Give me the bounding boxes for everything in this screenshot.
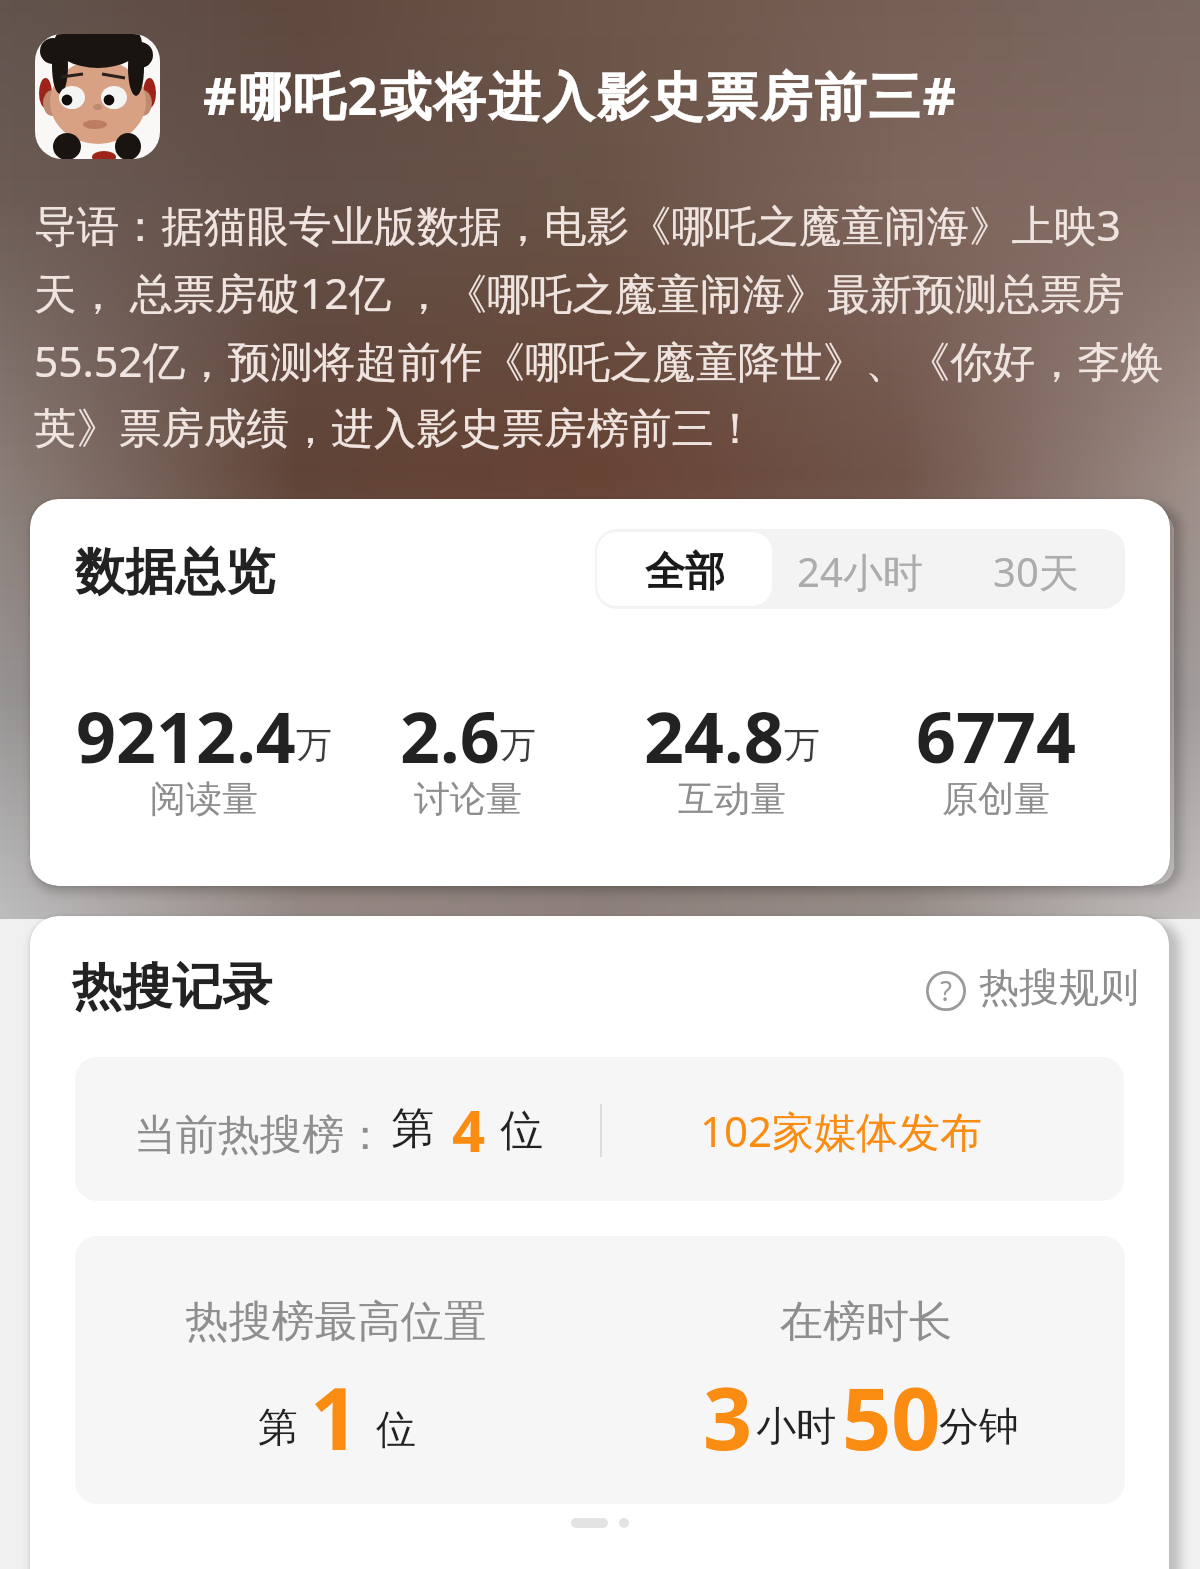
staticText: 9212.4 (76, 688, 296, 783)
staticText: 24小时 (797, 544, 923, 599)
staticText: 第 (258, 1402, 298, 1452)
staticText: 互动量 (678, 776, 786, 821)
staticText: #哪吒2或将进入影史票房前三# (203, 59, 959, 130)
button[interactable]: 24.8 (592, 688, 872, 833)
button[interactable]: 24小时 (772, 529, 947, 609)
staticText: 阅读量 (150, 776, 258, 821)
button[interactable]: 全部 (597, 532, 772, 606)
button[interactable]: 30天 (947, 529, 1125, 609)
staticText: 24.8 (644, 688, 784, 783)
staticText: 导语：据猫眼专业版数据，电影《哪吒之魔童闹海》上映3 天， 总票房破12亿 ，《… (34, 196, 1163, 456)
staticText: 讨论量 (414, 776, 522, 821)
staticText: 50 (842, 1358, 941, 1475)
staticText: 102家媒体发布 (700, 1102, 983, 1159)
staticText: 位 (376, 1404, 416, 1454)
staticText: ? (906, 972, 986, 1009)
staticText: 数据总览 (75, 541, 275, 604)
staticText: 第 (391, 1102, 434, 1156)
staticText: 2.6 (400, 688, 500, 783)
staticText: 分钟 (939, 1401, 1019, 1451)
staticText: 万 (784, 722, 820, 767)
staticText: 位 (500, 1104, 543, 1158)
button[interactable]: 2.6 (328, 688, 608, 833)
staticText: 热搜记录 (72, 956, 272, 1019)
button[interactable]: 6774 (856, 688, 1136, 833)
button[interactable]: 话题头像 (35, 34, 160, 159)
staticText: 在榜时长 (636, 1295, 1096, 1349)
staticText: 热搜榜最高位置 (106, 1295, 566, 1349)
staticText: 6774 (916, 688, 1077, 783)
staticText: 1 (310, 1358, 360, 1475)
staticText: 热搜规则 (979, 962, 1139, 1012)
staticText: 原创量 (942, 776, 1050, 821)
staticText: 3 (703, 1358, 753, 1475)
staticText: 全部 (645, 546, 725, 596)
button[interactable]: 9212.4 (64, 688, 344, 833)
staticText: 小时 (756, 1401, 836, 1451)
staticText: 4 (452, 1090, 486, 1169)
staticText: 当前热搜榜： (134, 1109, 386, 1162)
button[interactable]: 当前热搜榜第4位 (75, 1057, 1124, 1201)
staticText: 30天 (993, 544, 1079, 599)
button[interactable]: 热搜规则 (920, 962, 1142, 1020)
staticText: 万 (296, 722, 332, 767)
staticText: 万 (500, 722, 536, 767)
